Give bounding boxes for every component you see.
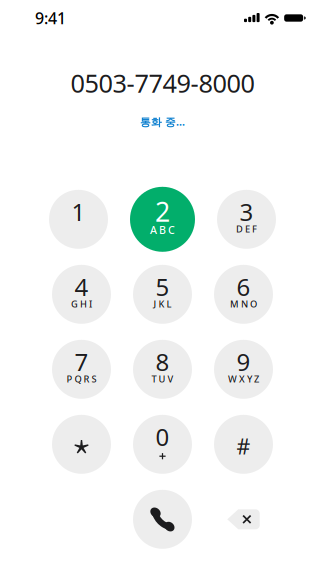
button[interactable]: 1 [49,190,108,249]
staticText: 6 [236,271,250,303]
staticText: J K L [153,298,171,310]
button[interactable]: 7 [52,340,111,399]
staticText: 5 [155,271,169,303]
button[interactable]: 9 [214,340,273,399]
staticText: # [236,432,250,460]
button[interactable]: 4 [52,265,111,324]
staticText: 0 [155,421,169,453]
staticText: W X Y Z [228,373,259,385]
button[interactable]: 6 [214,265,273,324]
staticText: 1 [71,196,85,228]
button[interactable]: Call [133,490,192,549]
button[interactable]: 8 [133,340,192,399]
button[interactable]: 5 [133,265,192,324]
staticText: G H I [71,298,92,310]
button[interactable]: # [214,415,273,474]
staticText: 통화 중... [140,115,185,129]
staticText: T U V [151,373,173,385]
staticText: M N O [230,298,257,310]
button[interactable]: 3 [217,190,276,249]
staticText: P Q R S [66,373,96,385]
staticText: 7 [74,346,88,378]
staticText: 4 [74,271,88,303]
staticText: 2 [155,194,170,229]
button[interactable]: Delete [214,490,273,549]
button[interactable]: 2 [130,187,195,252]
staticText: 8 [155,346,169,378]
staticText: D E F [236,223,257,235]
staticText: 9:41 [35,7,66,29]
staticText: A B C [150,223,175,237]
staticText: 9 [236,346,250,378]
button[interactable] [52,415,111,474]
staticText: 3 [239,196,253,228]
button[interactable]: 0 [133,415,192,474]
staticText: 0503-7749-8000 [70,66,254,100]
